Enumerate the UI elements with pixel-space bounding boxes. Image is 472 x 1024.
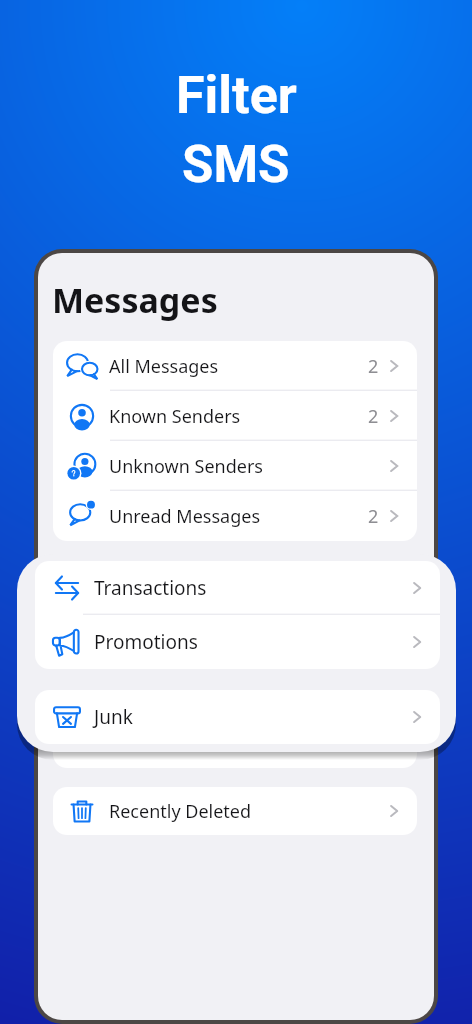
- button[interactable]: Promotions: [35, 615, 440, 669]
- staticText: Messages: [52, 277, 218, 323]
- button[interactable]: Transactions: [53, 561, 417, 611]
- staticText: All Messages: [109, 354, 219, 379]
- staticText: Recently Deleted: [109, 799, 252, 824]
- staticText: Unread Messages: [109, 504, 261, 529]
- button[interactable]: Recently Deleted: [53, 787, 417, 835]
- staticText: Junk: [109, 729, 146, 754]
- button[interactable]: Junk: [53, 714, 417, 768]
- staticText: Unknown Senders: [109, 454, 263, 479]
- button[interactable]: Unknown Senders: [53, 441, 417, 491]
- button[interactable]: All Messages: [53, 341, 417, 391]
- staticText: 2: [368, 504, 379, 529]
- button[interactable]: Promotions: [53, 611, 417, 661]
- staticText: 2: [368, 404, 379, 429]
- staticText: Promotions: [94, 629, 198, 655]
- staticText: Filter: [176, 65, 297, 126]
- staticText: Transactions: [109, 574, 216, 599]
- button[interactable]: Junk: [35, 690, 440, 744]
- button[interactable]: Transactions: [35, 561, 440, 615]
- button[interactable]: Unread Messages: [53, 491, 417, 541]
- staticText: Promotions: [109, 624, 208, 649]
- staticText: Known Senders: [109, 404, 241, 429]
- staticText: Junk: [94, 704, 133, 730]
- staticText: Transactions: [94, 575, 207, 601]
- staticText: SMS: [182, 135, 290, 195]
- staticText: 2: [368, 354, 379, 379]
- button[interactable]: Known Senders: [53, 391, 417, 441]
